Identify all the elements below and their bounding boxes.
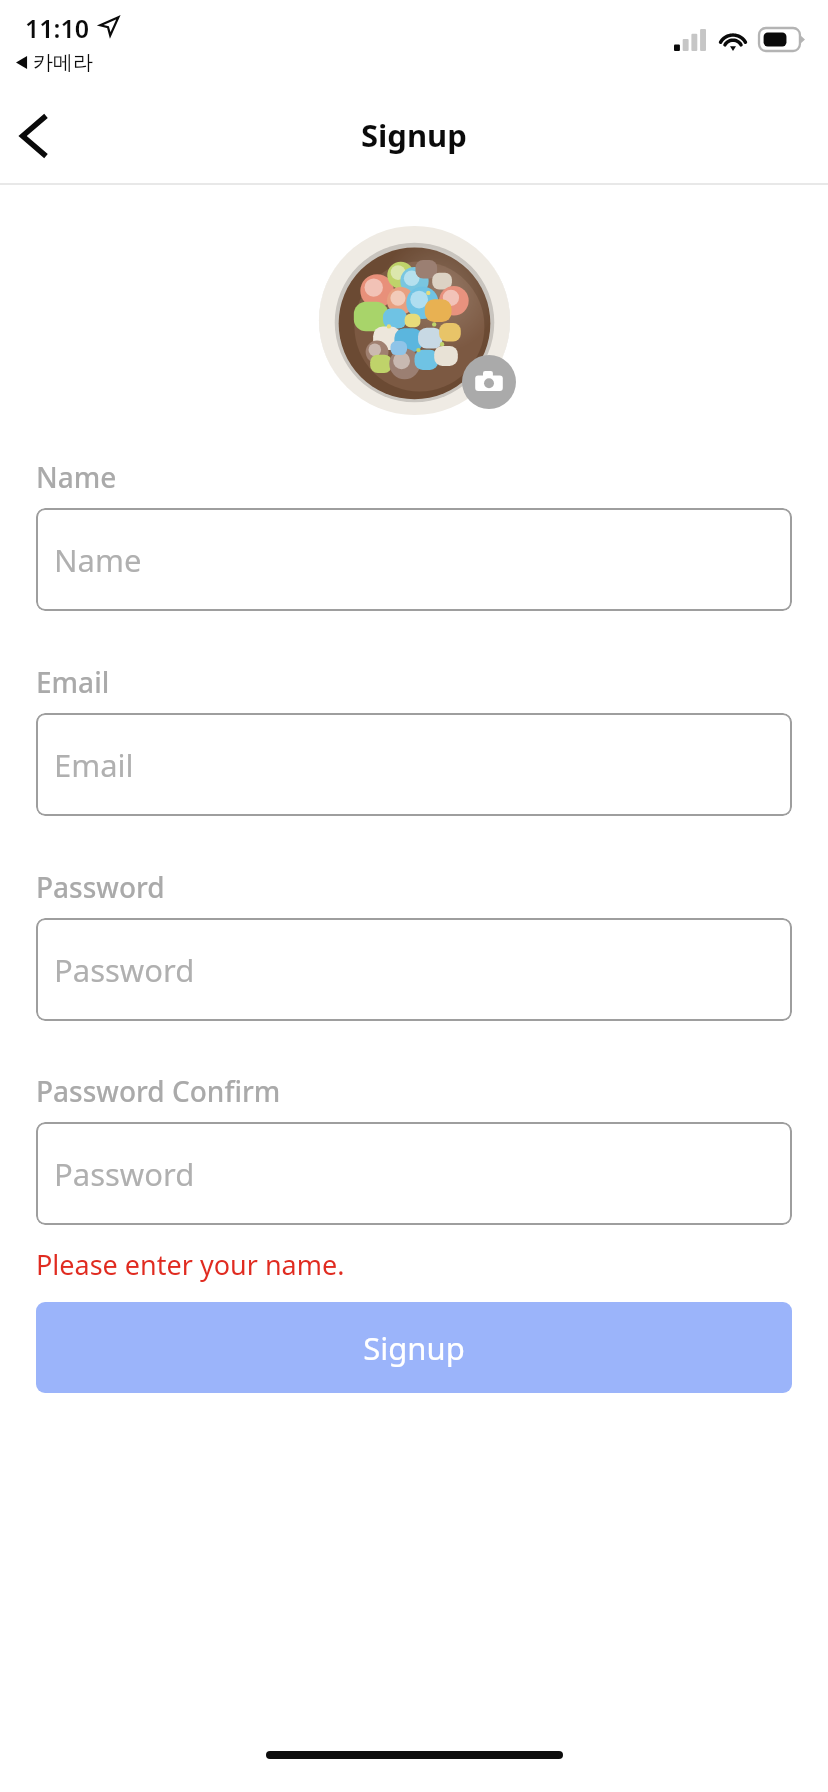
- staticText: Email: [36, 663, 110, 701]
- staticText: Signup: [361, 114, 467, 156]
- button[interactable]: Change profile photo: [316, 222, 513, 419]
- staticText: Please enter your name.: [36, 1246, 345, 1283]
- staticText: 11:10: [25, 11, 90, 45]
- staticText: 카메라: [33, 50, 93, 75]
- button[interactable]: Email: [36, 713, 792, 816]
- staticText: Password: [54, 949, 195, 991]
- staticText: Password: [36, 868, 165, 906]
- button[interactable]: Back: [0, 103, 66, 169]
- button[interactable]: Signup: [36, 1302, 792, 1393]
- staticText: Email: [54, 744, 134, 786]
- staticText: Signup: [363, 1327, 465, 1369]
- button[interactable]: Name: [36, 508, 792, 611]
- staticText: Password: [54, 1153, 195, 1195]
- button[interactable]: Password: [36, 1122, 792, 1225]
- staticText: Password Confirm: [36, 1072, 281, 1110]
- button[interactable]: Password: [36, 918, 792, 1021]
- staticText: Name: [36, 458, 117, 496]
- staticText: Name: [54, 539, 142, 581]
